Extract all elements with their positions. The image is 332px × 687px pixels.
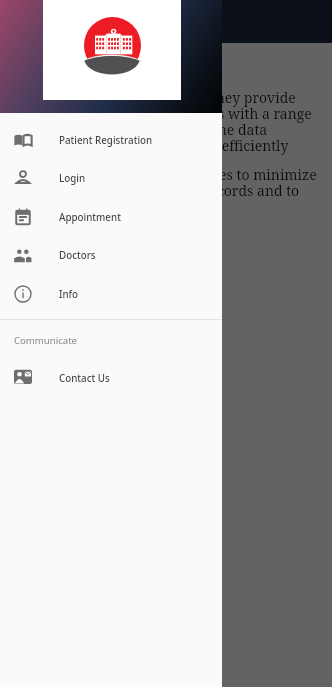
button[interactable]: Patient Registration	[0, 121, 222, 159]
other: Appointment	[14, 208, 32, 226]
button[interactable]: Info	[0, 275, 222, 313]
other: Contact Us	[14, 369, 32, 387]
button[interactable]: Login	[0, 159, 222, 197]
staticText: Contact Us	[59, 372, 110, 385]
other: Info	[14, 285, 32, 303]
other: Login	[14, 169, 32, 187]
staticText: They also give hospitals chances to mini…	[18, 165, 317, 181]
staticText: Appointment	[59, 211, 121, 224]
staticText: Hospital systems are useful. They provid…	[18, 88, 296, 104]
other: Patient Registration	[14, 131, 32, 149]
staticText: Communicate	[14, 334, 78, 347]
staticText: Login	[59, 172, 86, 185]
staticText: administrators and the doctors with a ra…	[18, 104, 312, 120]
staticText: the whole amount of paper records and to	[18, 181, 300, 197]
button[interactable]: Doctors	[0, 236, 222, 274]
staticText: Doctors	[59, 249, 96, 262]
staticText: Info	[59, 288, 79, 301]
button[interactable]: Contact Us	[0, 359, 222, 397]
staticText: Patient Registration	[59, 134, 153, 147]
other: Doctors	[14, 246, 32, 264]
button[interactable]: Appointment	[0, 198, 222, 236]
staticText: of the hospital is handled well efficien…	[18, 136, 289, 152]
staticText: of tools and the features that the data	[18, 120, 268, 136]
